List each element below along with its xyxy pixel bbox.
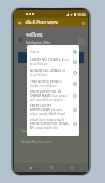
staticText: KNOW SURVEY NO. DETAIL, [30, 122, 70, 126]
button[interactable]: NONOM NO. DETAILS ની [27, 67, 79, 78]
staticText: નોંધની વિગત જાણવા [25, 19, 58, 26]
staticText: ENTRY LIST BY [30, 104, 51, 108]
staticText: KNOR SURVEY NO. BY [30, 90, 62, 94]
button[interactable]: Home [48, 164, 55, 171]
button[interactable]: ENTRY LIST BY [27, 103, 79, 117]
button[interactable]: નોંધની વિગત જાણવા (જૂની વિગત) [27, 117, 79, 131]
button[interactable]: Back [17, 20, 23, 26]
staticText: પ્લોટ નં. [30, 50, 41, 54]
staticText: MONTH-YEAR (વર્ષ અને [30, 108, 62, 112]
button[interactable]: પ્લોટ નં. [27, 47, 79, 56]
staticText: સર્વે નંબરની વિગત જાણવા [30, 98, 63, 102]
button[interactable]: Recent apps [27, 164, 34, 171]
button[interactable]: 1988 NOTICE DETAILS [27, 78, 79, 89]
staticText: NONOM NO. DETAILS ની [30, 69, 66, 73]
staticText: SURVEY NO. DETAILS, 6 સર્વે [30, 58, 69, 62]
staticText: નંબરની વિગત [30, 62, 48, 66]
button[interactable]: SURVEY NO. DETAILS, 6 સર્વે [27, 56, 79, 67]
staticText: અકિલા [26, 30, 43, 40]
staticText: 10:05 [77, 12, 86, 17]
button[interactable]: Back [68, 164, 75, 171]
staticText: નંબરની વિગત [30, 73, 48, 77]
staticText: 1988 NOTICE DETAILS [30, 80, 62, 84]
staticText: BY પ્રમાણે નોંધોની નોંધ [30, 126, 58, 130]
button[interactable]: KNOR SURVEY NO. BY [27, 89, 79, 103]
staticText: Survey No. (સર્વે નંબર) [21, 129, 52, 133]
staticText: નોંધની વિગત જાણવા (જૂની વિગત) [30, 118, 72, 122]
staticText: Sub Registrar Office [26, 41, 51, 45]
staticText: OWNER NAME (નામ મુજબ ) [30, 94, 69, 98]
staticText: Registrar Department Gujarat [26, 45, 60, 48]
staticText: નોટીસ-નંબરની વિગત [30, 84, 57, 88]
staticText: Gharat No. (ઘર નંબર) [21, 140, 52, 144]
button[interactable]: Settings [80, 20, 86, 26]
staticText: મહિના પ્રમાણે નોંધોની વિગત) [30, 112, 65, 116]
